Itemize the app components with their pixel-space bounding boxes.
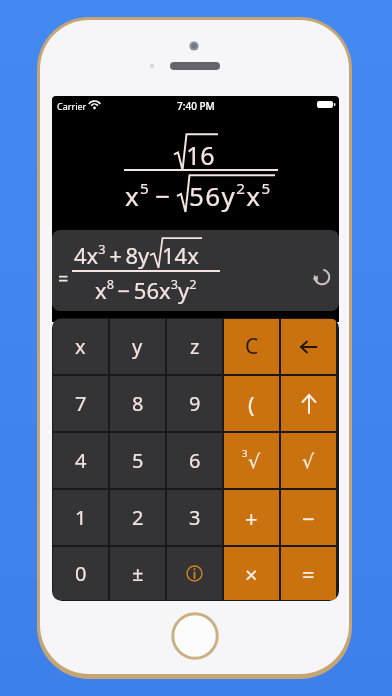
staticText: 1 xyxy=(75,504,87,531)
button[interactable]: 6 xyxy=(166,432,223,489)
button[interactable]: 8 xyxy=(109,375,166,432)
staticText: 8 xyxy=(132,390,144,417)
staticText: 4x3 + 8y xyxy=(74,240,150,270)
button[interactable]: √ xyxy=(280,432,337,489)
button[interactable]: + xyxy=(223,489,280,546)
staticText: − xyxy=(302,503,315,533)
staticText: x xyxy=(75,333,86,360)
staticText: z xyxy=(190,333,200,360)
staticText: 5 xyxy=(132,447,144,474)
staticText: + xyxy=(245,503,258,533)
staticText: x8 − 56x3y2 xyxy=(95,275,197,305)
staticText: ( xyxy=(248,389,255,419)
staticText: y xyxy=(132,333,143,360)
staticText: 9 xyxy=(189,390,201,417)
button[interactable]: 4 xyxy=(52,432,109,489)
button[interactable] xyxy=(313,268,331,286)
staticText: × xyxy=(245,559,258,589)
staticText: 3 xyxy=(242,447,248,460)
button[interactable]: 2 xyxy=(109,489,166,546)
button[interactable]: z xyxy=(166,318,223,375)
staticText: Carrier xyxy=(57,100,87,112)
button[interactable]: √ xyxy=(223,432,280,489)
button[interactable]: 7 xyxy=(52,375,109,432)
staticText: 7 xyxy=(75,390,87,417)
button[interactable]: x xyxy=(52,318,109,375)
button[interactable]: = xyxy=(280,546,337,601)
staticText: 2 xyxy=(132,504,144,531)
staticText: = xyxy=(58,266,69,291)
staticText: 16 xyxy=(186,138,215,172)
button[interactable]: 1 xyxy=(52,489,109,546)
button[interactable]: 3 xyxy=(166,489,223,546)
staticText: 6 xyxy=(189,447,201,474)
staticText: √ xyxy=(302,450,315,472)
button[interactable]: ( xyxy=(223,375,280,432)
staticText: 3 xyxy=(189,504,201,531)
button[interactable]: × xyxy=(223,546,280,601)
button[interactable] xyxy=(280,375,337,432)
staticText: x5 − xyxy=(125,178,177,214)
staticText: √ xyxy=(248,450,261,472)
staticText: 4 xyxy=(75,447,87,474)
button[interactable]: C xyxy=(223,318,280,375)
button[interactable] xyxy=(166,546,223,601)
button[interactable]: y xyxy=(109,318,166,375)
button[interactable]: 9 xyxy=(166,375,223,432)
button[interactable]: 0 xyxy=(52,546,109,601)
button[interactable]: − xyxy=(280,489,337,546)
staticText: 0 xyxy=(75,560,87,587)
staticText: 14x xyxy=(162,240,199,270)
button[interactable] xyxy=(280,318,337,375)
staticText: 56y2x5 xyxy=(189,178,272,214)
button[interactable]: ± xyxy=(109,546,166,601)
staticText: 7:40 PM xyxy=(177,99,215,113)
staticText: ± xyxy=(132,560,144,587)
staticText: C xyxy=(245,332,259,361)
staticText: = xyxy=(302,559,315,589)
button[interactable]: 5 xyxy=(109,432,166,489)
